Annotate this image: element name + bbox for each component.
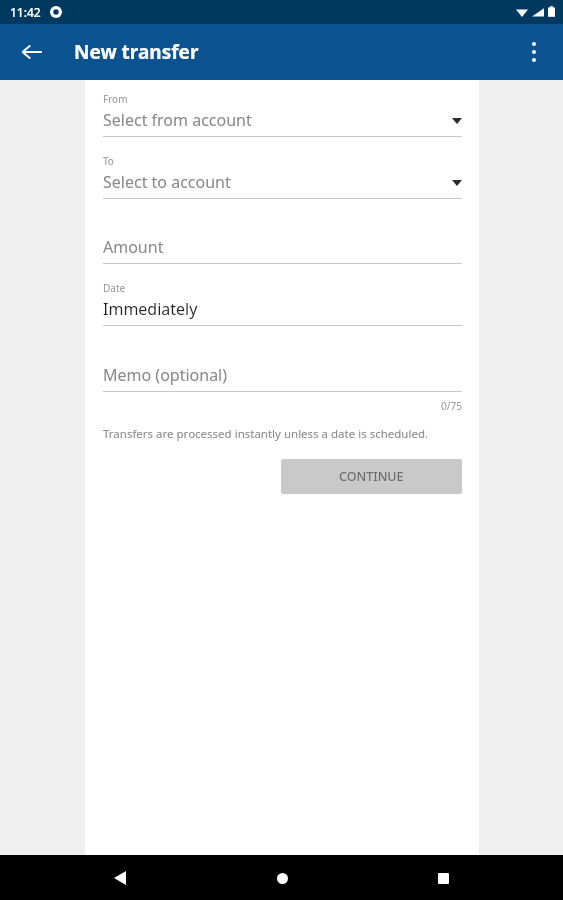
- button[interactable]: CONTINUE: [281, 459, 462, 494]
- staticText: To: [103, 154, 114, 168]
- staticText: New transfer: [74, 39, 199, 65]
- button[interactable]: Amount: [103, 236, 462, 264]
- staticText: CONTINUE: [339, 468, 404, 485]
- staticText: Amount: [103, 236, 164, 258]
- staticText: Immediately: [103, 298, 198, 320]
- button[interactable]: Back: [100, 858, 140, 898]
- staticText: From: [103, 92, 128, 106]
- button[interactable]: Home: [262, 858, 302, 898]
- button[interactable]: Memo (optional): [103, 364, 462, 392]
- button[interactable]: From: [103, 92, 462, 137]
- staticText: 0/75: [103, 399, 462, 413]
- button[interactable]: More options: [512, 30, 556, 74]
- button[interactable]: Recent apps: [423, 858, 463, 898]
- button[interactable]: To: [103, 154, 462, 199]
- button[interactable]: Back: [10, 30, 54, 74]
- staticText: Memo (optional): [103, 364, 228, 386]
- staticText: Transfers are processed instantly unless…: [103, 426, 429, 442]
- staticText: Select to account: [103, 171, 452, 193]
- staticText: Select from account: [103, 109, 452, 131]
- button[interactable]: Date: [103, 281, 462, 326]
- staticText: Date: [103, 281, 126, 295]
- staticText: 11:42: [10, 4, 41, 20]
